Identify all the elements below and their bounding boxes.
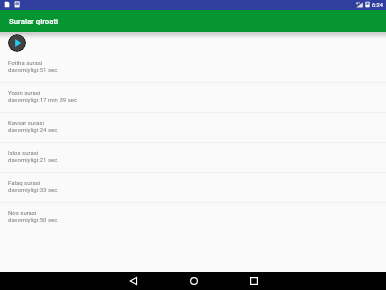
button[interactable]: Back bbox=[125, 272, 143, 290]
button[interactable]: Falaq surasi bbox=[0, 173, 386, 202]
staticText: Suralar qiroati bbox=[9, 17, 59, 26]
button[interactable]: Recent apps bbox=[245, 272, 263, 290]
staticText: davomiyligi:51 sec bbox=[8, 66, 58, 73]
button[interactable]: Ixlos surasi bbox=[0, 143, 386, 172]
staticText: Nos surasi bbox=[8, 209, 37, 216]
button[interactable]: Kavsar surasi bbox=[0, 113, 386, 142]
staticText: Falaq surasi bbox=[8, 179, 41, 186]
staticText: Kavsar surasi bbox=[8, 119, 44, 126]
staticText: 6:24 bbox=[372, 2, 383, 9]
staticText: davomiyligi:50 sec bbox=[8, 216, 58, 223]
staticText: davomiyligi:33 sec bbox=[8, 186, 58, 193]
staticText: davomiyligi:24 sec bbox=[8, 126, 58, 133]
staticText: davomiyligi:17 min 39 sec bbox=[8, 96, 78, 103]
staticText: Fotiha surasi bbox=[8, 59, 43, 66]
staticText: Ixlos surasi bbox=[8, 149, 39, 156]
button[interactable]: Home bbox=[185, 272, 203, 290]
button[interactable]: Fotiha surasi bbox=[0, 53, 386, 82]
button[interactable]: Nos surasi bbox=[0, 203, 386, 232]
staticText: davomiyligi:21 sec bbox=[8, 156, 58, 163]
button[interactable]: Yosin surasi bbox=[0, 83, 386, 112]
button[interactable]: Play bbox=[8, 34, 26, 52]
staticText: Yosin surasi bbox=[8, 89, 41, 96]
